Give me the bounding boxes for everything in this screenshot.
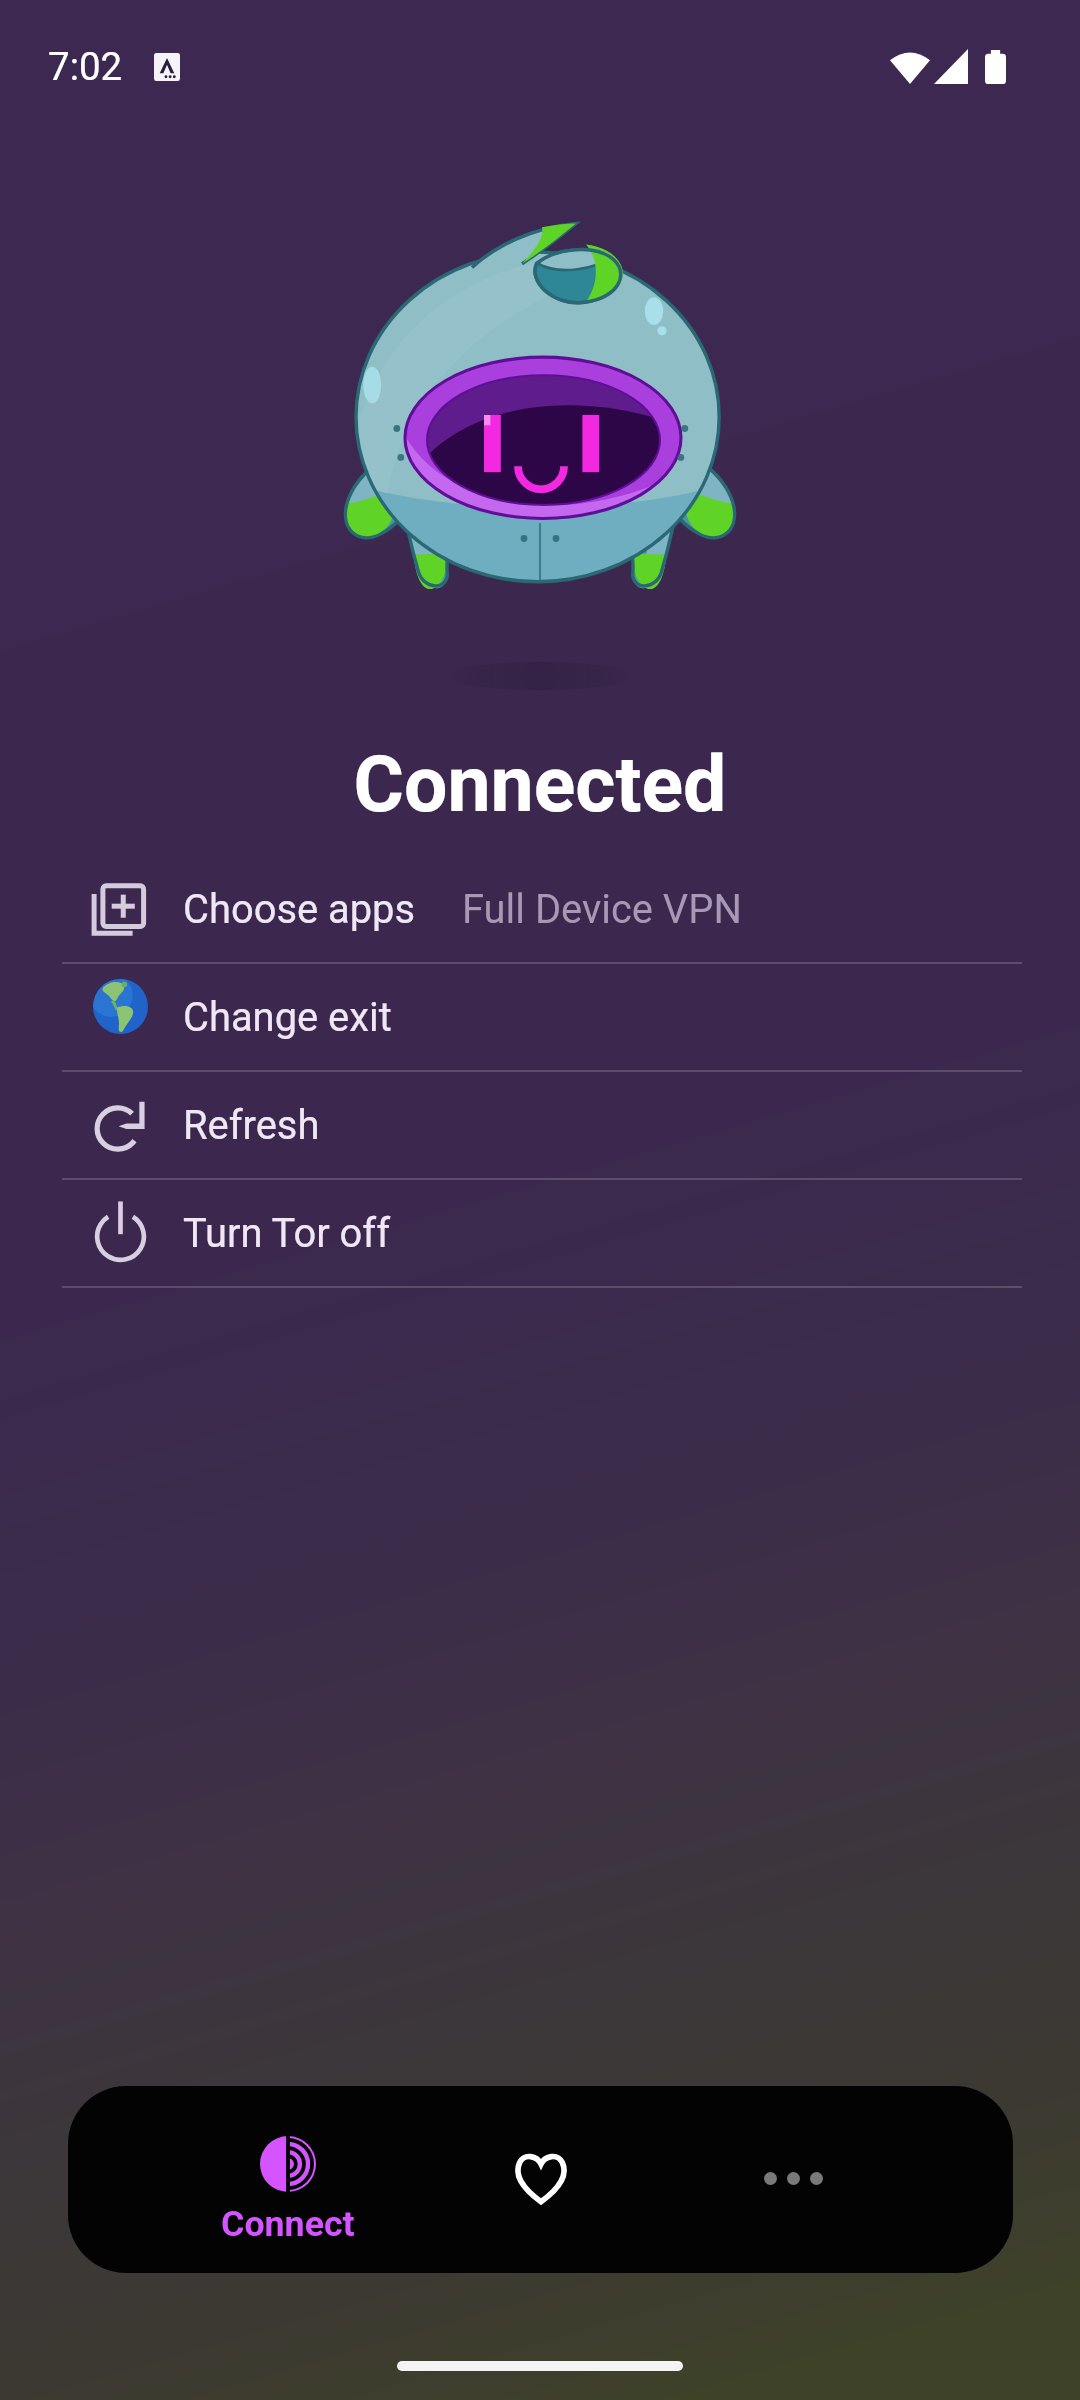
staticText: 7:02 [48, 44, 123, 89]
staticText: Connected [0, 740, 1080, 830]
staticText: Change exit [183, 994, 392, 1041]
button[interactable]: Favorites [414, 2086, 667, 2273]
staticText: Connect [221, 2203, 355, 2245]
button[interactable]: Refresh [0, 1072, 1080, 1178]
staticText: Turn Tor off [183, 1210, 391, 1257]
staticText: Choose apps [183, 886, 416, 933]
button[interactable]: Turn Tor off [0, 1180, 1080, 1286]
staticText: Refresh [183, 1102, 320, 1149]
button[interactable]: Choose apps [0, 856, 1080, 962]
staticText: Full Device VPN [462, 886, 742, 933]
button[interactable]: Connect [161, 2086, 414, 2273]
button[interactable]: Change exit [0, 964, 1080, 1070]
button[interactable]: More options [667, 2086, 920, 2273]
